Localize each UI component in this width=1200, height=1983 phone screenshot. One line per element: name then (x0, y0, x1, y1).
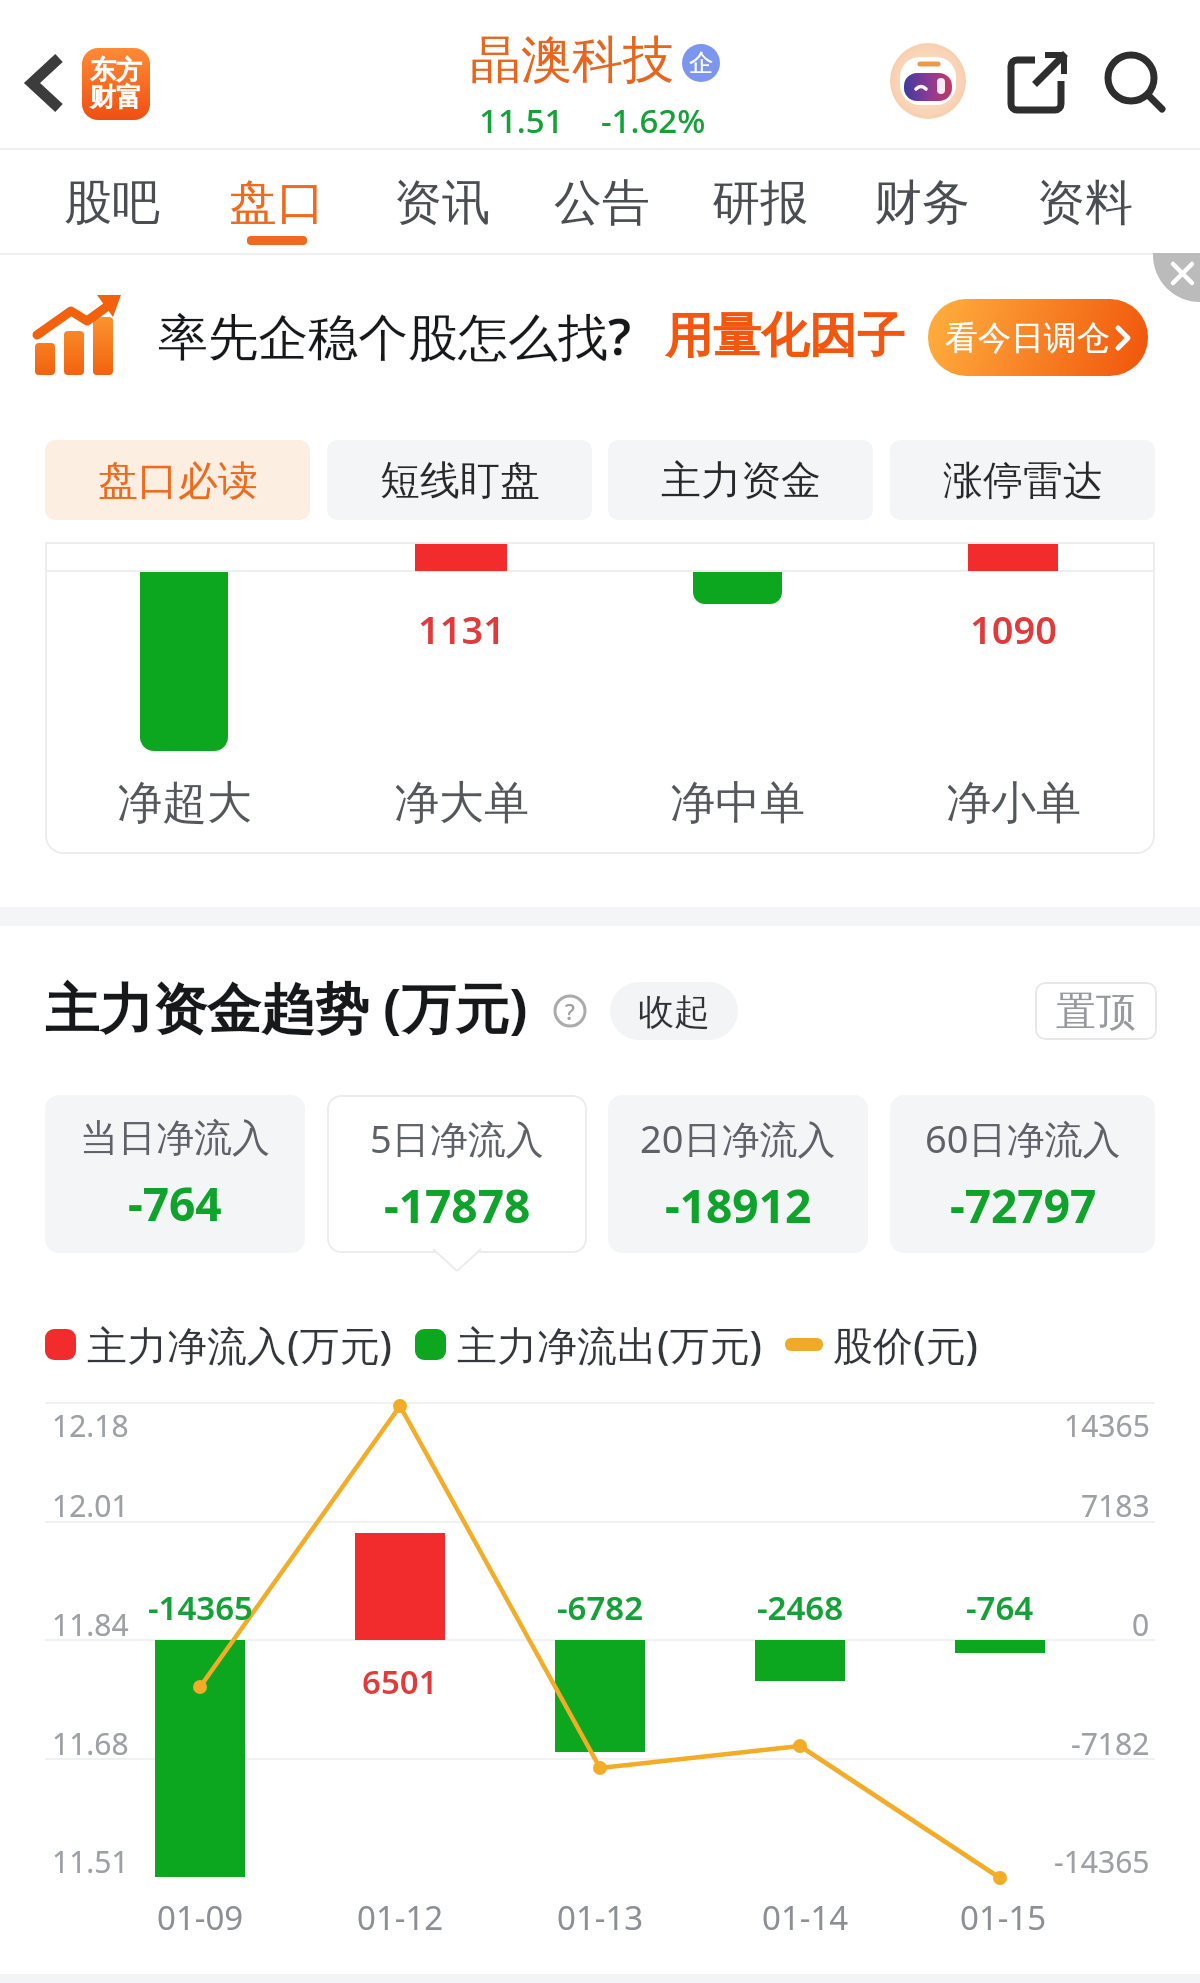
staticText: ? (565, 996, 575, 1026)
staticText: 置顶 (1056, 986, 1136, 1036)
button[interactable]: 资料 (1020, 160, 1150, 246)
staticText: 净大单 (394, 775, 529, 832)
staticText: 收起 (638, 989, 710, 1034)
staticText: 短线盯盘 (380, 455, 540, 505)
staticText: 11.51 (479, 98, 564, 143)
staticText: 用量化因子 (665, 306, 905, 366)
staticText: 财富 (90, 81, 142, 114)
staticText: -1.62% (601, 98, 706, 143)
staticText: 01-13 (557, 1895, 644, 1940)
staticText: 11.51 (52, 1841, 129, 1882)
staticText: 资讯 (394, 173, 490, 233)
staticText: 01-09 (157, 1895, 244, 1940)
staticText: 12.18 (52, 1405, 129, 1446)
button[interactable]: 主力资金 (608, 440, 873, 520)
staticText: 主力净流入(万元) (87, 1317, 392, 1372)
button[interactable]: 看今日调仓 (928, 299, 1148, 376)
staticText: 12.01 (52, 1485, 129, 1526)
button[interactable]: 盘口必读 (45, 440, 310, 520)
staticText: 1131 (418, 603, 505, 655)
button[interactable] (890, 43, 966, 119)
staticText: 11.84 (52, 1604, 129, 1645)
staticText: -17878 (384, 1174, 531, 1237)
staticText: 主力净流出(万元) (457, 1317, 762, 1372)
staticText: 净小单 (946, 775, 1081, 832)
staticText: 主力资金趋势 (万元) (45, 970, 528, 1044)
button[interactable]: 资讯 (377, 160, 507, 246)
button[interactable]: 收起 (610, 982, 738, 1040)
button[interactable]: 短线盯盘 (327, 440, 592, 520)
staticText: 1090 (970, 603, 1057, 655)
button[interactable]: 5日净流入 (327, 1095, 587, 1253)
staticText: 资料 (1037, 173, 1133, 233)
staticText: -2468 (757, 1585, 844, 1630)
button[interactable] (15, 42, 79, 124)
button[interactable]: 当日净流入 (45, 1095, 305, 1253)
staticText: 5日净流入 (370, 1112, 544, 1164)
staticText: 6501 (362, 1659, 438, 1704)
staticText: -14365 (148, 1585, 253, 1630)
staticText: -764 (966, 1585, 1034, 1630)
staticText: 11.68 (52, 1723, 129, 1764)
staticText: -7182 (1071, 1723, 1150, 1764)
staticText: 60日净流入 (925, 1112, 1121, 1164)
button[interactable]: 置顶 (1035, 982, 1157, 1040)
button[interactable]: 东方 (82, 48, 150, 120)
button[interactable]: 60日净流入 (890, 1095, 1155, 1253)
staticText: 当日净流入 (80, 1114, 270, 1162)
staticText: 主力资金 (661, 455, 821, 505)
staticText: 晶澳科技 (470, 28, 674, 92)
staticText: 研报 (712, 173, 808, 233)
staticText: 涨停雷达 (943, 455, 1103, 505)
button[interactable]: 20日净流入 (608, 1095, 868, 1253)
staticText: 公告 (554, 173, 650, 233)
staticText: -764 (128, 1172, 222, 1235)
staticText: 盘口 (229, 173, 325, 233)
staticText: 率先企稳个股怎么找? (158, 302, 632, 370)
button[interactable]: 财务 (857, 160, 987, 246)
staticText: 14365 (1064, 1405, 1150, 1446)
staticText: 01-12 (357, 1895, 444, 1940)
staticText: 东方 (90, 54, 142, 87)
staticText: 股吧 (64, 173, 160, 233)
staticText: 股价(元) (833, 1317, 978, 1372)
staticText: 01-14 (762, 1895, 849, 1940)
button[interactable]: 股吧 (47, 160, 177, 246)
staticText: 看今日调仓 (945, 317, 1110, 359)
staticText: 7183 (1081, 1485, 1150, 1526)
button[interactable] (1000, 45, 1076, 121)
button[interactable]: 涨停雷达 (890, 440, 1155, 520)
staticText: -14365 (1054, 1841, 1150, 1882)
staticText: -6782 (557, 1585, 644, 1630)
staticText: 01-15 (960, 1895, 1047, 1940)
button[interactable] (1150, 253, 1200, 303)
button[interactable] (1096, 42, 1174, 120)
staticText: 净中单 (670, 775, 805, 832)
staticText: 0 (1132, 1604, 1150, 1645)
staticText: -72797 (950, 1174, 1097, 1237)
staticText: -18912 (665, 1174, 812, 1237)
staticText: 盘口必读 (98, 455, 258, 505)
staticText: 财务 (874, 173, 970, 233)
staticText: 20日净流入 (640, 1112, 836, 1164)
staticText: 净超大 (117, 775, 252, 832)
button[interactable]: 公告 (537, 160, 667, 246)
button[interactable]: 盘口 (212, 160, 342, 246)
button[interactable]: 研报 (695, 160, 825, 246)
staticText: 企 (689, 48, 713, 78)
